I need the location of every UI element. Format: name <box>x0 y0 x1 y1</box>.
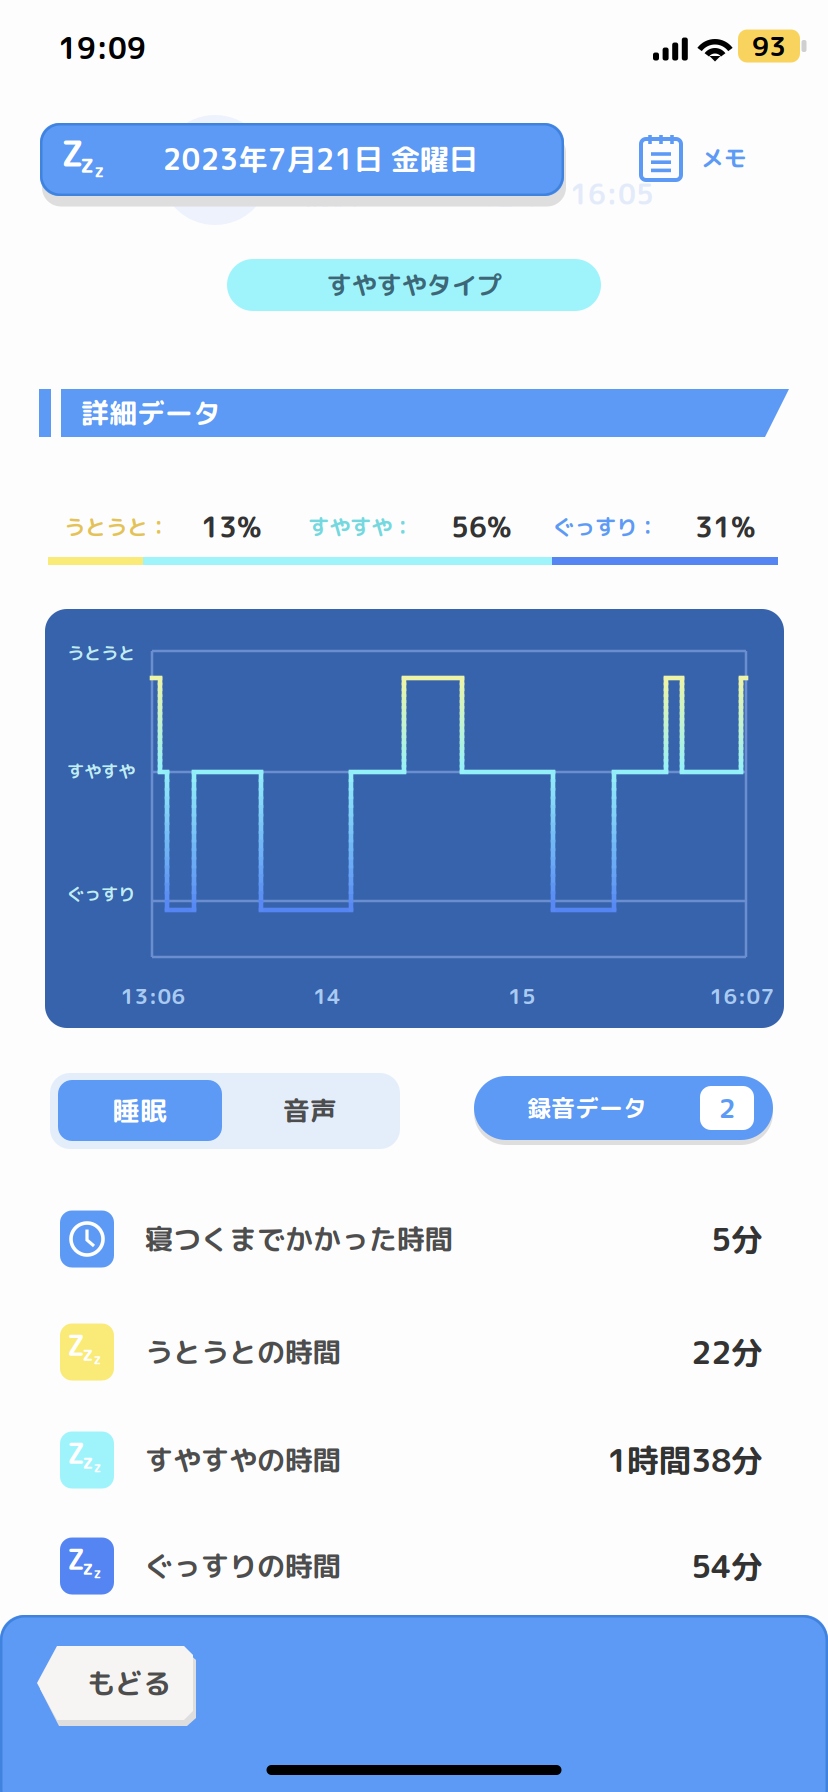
staticText: 1時間38分 <box>607 1438 763 1482</box>
staticText: うとうと <box>67 641 135 665</box>
staticText: すやすやタイプ <box>326 267 501 303</box>
staticText: 就寝：13:11 起床：16:05 <box>302 174 654 214</box>
staticText: 2023年7月21日 金曜日 <box>162 138 477 179</box>
staticText: z <box>93 1563 101 1583</box>
button[interactable]: Z <box>0 1418 828 1527</box>
button[interactable]: もどる <box>37 1646 203 1732</box>
button[interactable]: Z <box>40 123 564 196</box>
staticText: 15 <box>508 981 536 1011</box>
staticText: 56% <box>451 507 511 547</box>
button[interactable]: Z <box>0 1310 828 1419</box>
button[interactable]: Z <box>0 1524 828 1633</box>
staticText: 19:09 <box>58 27 146 68</box>
staticText: Z <box>67 1434 85 1473</box>
staticText: 31% <box>695 507 755 547</box>
staticText: 音声 <box>283 1092 337 1129</box>
button[interactable]: 録音データ <box>474 1076 773 1140</box>
staticText: ぐっすり： <box>553 512 658 542</box>
staticText: ぐっすり <box>67 882 135 906</box>
staticText: z <box>93 1349 101 1369</box>
staticText: 13% <box>201 507 261 547</box>
button[interactable]: メモ <box>641 135 763 180</box>
staticText: Z <box>61 128 83 178</box>
staticText: z <box>93 1457 101 1477</box>
staticText: 13:06 <box>120 981 185 1011</box>
staticText: 詳細データ <box>81 393 221 433</box>
staticText: 54分 <box>691 1544 763 1588</box>
staticText: 16:07 <box>709 981 774 1011</box>
staticText: 22分 <box>691 1330 763 1374</box>
staticText: Z <box>67 1326 85 1365</box>
staticText: ぐっすりの時間 <box>145 1546 341 1586</box>
button[interactable]: 音声 <box>228 1080 392 1141</box>
staticText: z <box>82 1447 93 1475</box>
staticText: z <box>94 158 104 183</box>
staticText: 5分 <box>711 1217 763 1261</box>
staticText: 93 <box>752 27 786 65</box>
staticText: 寝つくまでかかった時間 <box>145 1219 453 1259</box>
staticText: 睡眠 <box>113 1092 167 1129</box>
staticText: うとうとの時間 <box>145 1332 341 1372</box>
staticText: すやすや： <box>308 512 413 542</box>
staticText: メモ <box>701 142 747 174</box>
staticText: すやすや <box>67 759 135 783</box>
button[interactable]: 寝つくまでかかった時間 <box>0 1197 828 1306</box>
staticText: 2 <box>718 1089 735 1127</box>
staticText: z <box>82 1339 93 1367</box>
staticText: もどる <box>87 1663 171 1703</box>
staticText: 録音データ <box>527 1091 647 1125</box>
button[interactable]: 睡眠 <box>58 1080 222 1141</box>
staticText: 14 <box>313 981 341 1011</box>
staticText: すやすやの時間 <box>145 1440 341 1480</box>
staticText: z <box>80 145 94 181</box>
staticText: z <box>82 1553 93 1581</box>
staticText: Z <box>67 1540 85 1579</box>
staticText: うとうと： <box>64 512 169 542</box>
